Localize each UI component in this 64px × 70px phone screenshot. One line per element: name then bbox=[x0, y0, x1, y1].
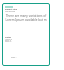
staticText: Lorem ip dolor si amet co bbox=[5, 38, 13, 43]
staticText: page 1 bbox=[11, 56, 17, 58]
staticText: There are many variations of bbox=[4, 14, 48, 18]
staticText: Subheading bbox=[5, 10, 16, 12]
staticText: Lorem Ipsum available but m bbox=[4, 18, 48, 22]
staticText: Notes bbox=[5, 36, 11, 39]
staticText: Project Title bbox=[5, 8, 17, 11]
